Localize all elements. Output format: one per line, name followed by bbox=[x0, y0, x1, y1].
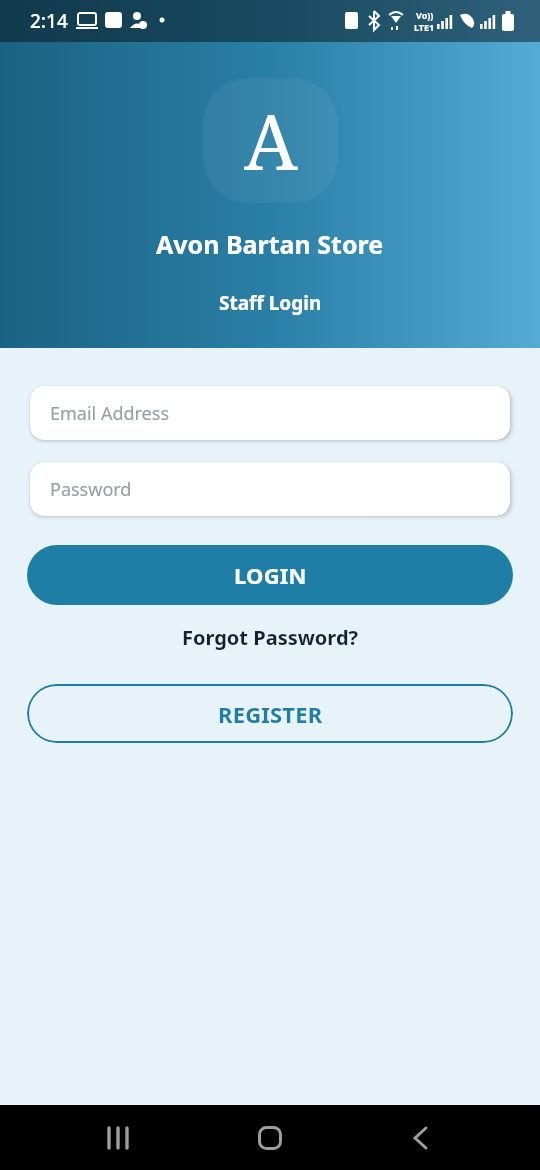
button[interactable] bbox=[96, 1114, 144, 1162]
staticText: 2:14 bbox=[30, 8, 68, 34]
button[interactable]: LOGIN bbox=[27, 545, 513, 605]
staticText: Vo)) bbox=[416, 9, 434, 21]
button[interactable] bbox=[396, 1114, 444, 1162]
staticText: LOGIN bbox=[234, 560, 307, 590]
button[interactable]: Forgot Password? bbox=[176, 618, 365, 657]
staticText: Password bbox=[50, 477, 132, 502]
button[interactable]: Email Address bbox=[30, 386, 510, 440]
staticText: Staff Login bbox=[219, 290, 322, 316]
staticText: A bbox=[244, 89, 298, 193]
button[interactable]: REGISTER bbox=[27, 684, 513, 743]
staticText: Avon Bartan Store bbox=[156, 227, 384, 261]
staticText: REGISTER bbox=[218, 699, 323, 729]
button[interactable] bbox=[246, 1114, 294, 1162]
staticText: Forgot Password? bbox=[182, 624, 359, 651]
button[interactable]: Password bbox=[30, 462, 510, 516]
staticText: Email Address bbox=[50, 401, 170, 426]
staticText: LTE1 bbox=[414, 21, 435, 33]
